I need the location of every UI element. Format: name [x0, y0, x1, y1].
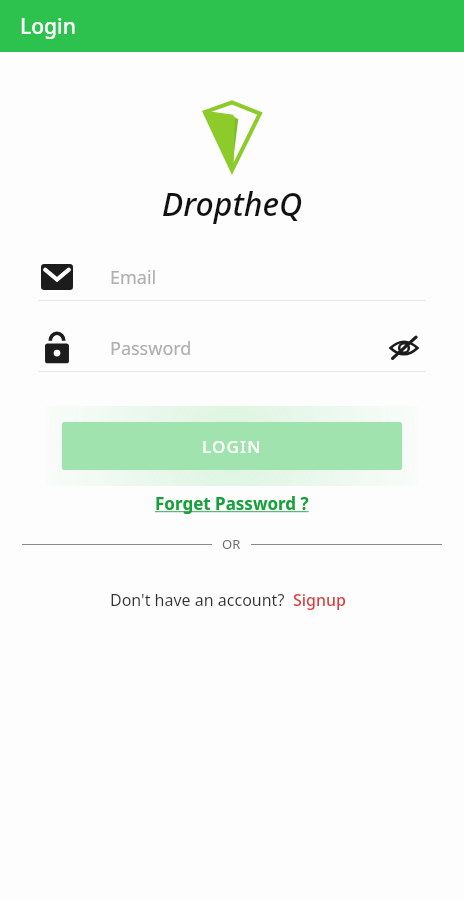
button[interactable]: Email icon: [38, 254, 426, 300]
staticText: OR: [222, 535, 241, 553]
staticText: Signup: [293, 589, 347, 611]
staticText: Login: [20, 12, 76, 41]
button[interactable]: Forget Password ?: [143, 486, 321, 521]
button[interactable]: LOGIN: [62, 422, 402, 470]
staticText: LOGIN: [202, 435, 262, 458]
other: Email icon: [38, 258, 76, 296]
staticText: Forget Password ?: [155, 492, 309, 515]
staticText: DroptheQ: [0, 182, 464, 226]
button[interactable]: Signup: [285, 585, 355, 615]
staticText: Email: [110, 265, 426, 290]
button[interactable]: Password icon: [38, 325, 426, 371]
staticText: Don't have an account?: [110, 589, 285, 611]
staticText: Password: [110, 336, 382, 361]
button[interactable]: Show password: [382, 326, 426, 370]
other: Password icon: [38, 329, 76, 367]
